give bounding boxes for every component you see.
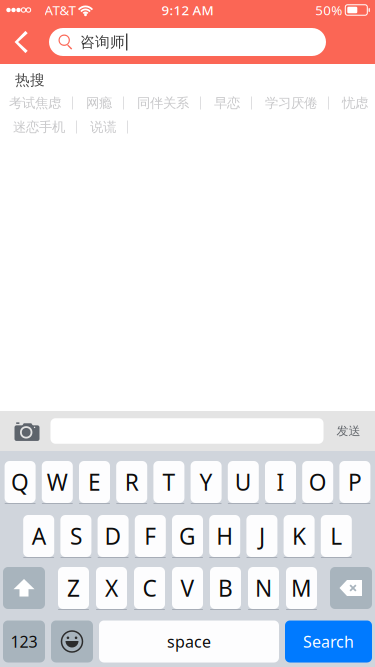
staticText: D [105,521,122,551]
button[interactable]: G [172,515,203,557]
button[interactable]: 发送 [323,411,375,451]
button[interactable]: 学习厌倦 [252,91,328,115]
button[interactable]: T [153,461,184,503]
button[interactable]: 早恋 [201,91,251,115]
button[interactable]: E [79,461,110,503]
button[interactable]: Shift [3,567,45,609]
staticText: H [216,521,233,551]
staticText: N [255,573,272,603]
staticText: 迷恋手机 [13,119,65,135]
staticText: V [180,573,194,603]
staticText: 50% [315,1,342,19]
button[interactable]: Y [191,461,222,503]
button[interactable]: M [286,567,317,609]
button[interactable]: Q [5,461,36,503]
button[interactable]: 考试焦虑 [0,91,72,115]
button[interactable]: K [284,515,315,557]
staticText: 学习厌倦 [265,95,317,111]
button[interactable]: 忧虑 [329,91,375,115]
button[interactable]: F [135,515,166,557]
staticText: Y [200,467,213,497]
staticText: I [276,467,284,497]
button[interactable]: S [60,515,91,557]
staticText: X [105,573,118,603]
staticText: 说谎 [90,119,116,135]
button[interactable]: P [339,461,370,503]
button[interactable]: O [302,461,333,503]
button[interactable]: R [116,461,147,503]
staticText: Z [67,573,80,603]
button[interactable]: U [228,461,259,503]
staticText: K [292,521,306,551]
staticText: R [125,467,139,497]
button[interactable]: I [265,461,296,503]
staticText: L [330,521,342,551]
staticText: O [309,467,327,497]
button[interactable]: 网瘾 [73,91,123,115]
staticText: space [167,631,211,652]
staticText: P [348,467,362,497]
button[interactable]: B [210,567,241,609]
button[interactable]: Camera [0,411,50,451]
button[interactable]: V [172,567,203,609]
staticText: 热搜 [15,71,45,89]
staticText: F [144,521,156,551]
staticText: E [88,467,101,497]
button[interactable]: D [98,515,129,557]
staticText: W [47,467,68,497]
staticText: J [259,521,265,551]
button[interactable]: space [99,620,279,662]
button[interactable]: Emoji [51,620,93,662]
staticText: G [179,521,196,551]
button[interactable]: Z [58,567,89,609]
button[interactable]: X [96,567,127,609]
staticText: AT&T [44,1,75,19]
button[interactable]: H [209,515,240,557]
staticText: U [235,467,252,497]
staticText: 咨询师 [80,33,125,51]
button[interactable]: L [321,515,352,557]
staticText: 发送 [336,424,360,438]
staticText: Search [303,631,354,652]
button[interactable]: 123 [3,620,45,662]
button[interactable]: 同伴关系 [124,91,200,115]
staticText: T [162,467,175,497]
button[interactable]: W [42,461,73,503]
button[interactable]: 迷恋手机 [0,115,76,139]
button[interactable]: Delete [330,567,372,609]
staticText: M [291,573,312,603]
button[interactable]: Back [0,20,49,64]
staticText: 123 [10,631,37,652]
staticText: A [32,521,46,551]
staticText: 同伴关系 [137,95,189,111]
button[interactable]: Search [285,620,372,662]
staticText: B [218,573,233,603]
staticText: S [70,521,82,551]
button[interactable]: 咨询师 [49,28,326,56]
button[interactable]: C [134,567,165,609]
staticText: 忧虑 [342,95,368,111]
button[interactable]: J [246,515,277,557]
button[interactable]: A [23,515,54,557]
staticText: 考试焦虑 [9,95,61,111]
staticText: 9:12 AM [161,1,213,19]
staticText: Q [11,467,29,497]
staticText: 早恋 [214,95,240,111]
button[interactable]: 说谎 [77,115,127,139]
button[interactable]: N [248,567,279,609]
staticText: C [142,573,156,603]
staticText: 网瘾 [86,95,112,111]
